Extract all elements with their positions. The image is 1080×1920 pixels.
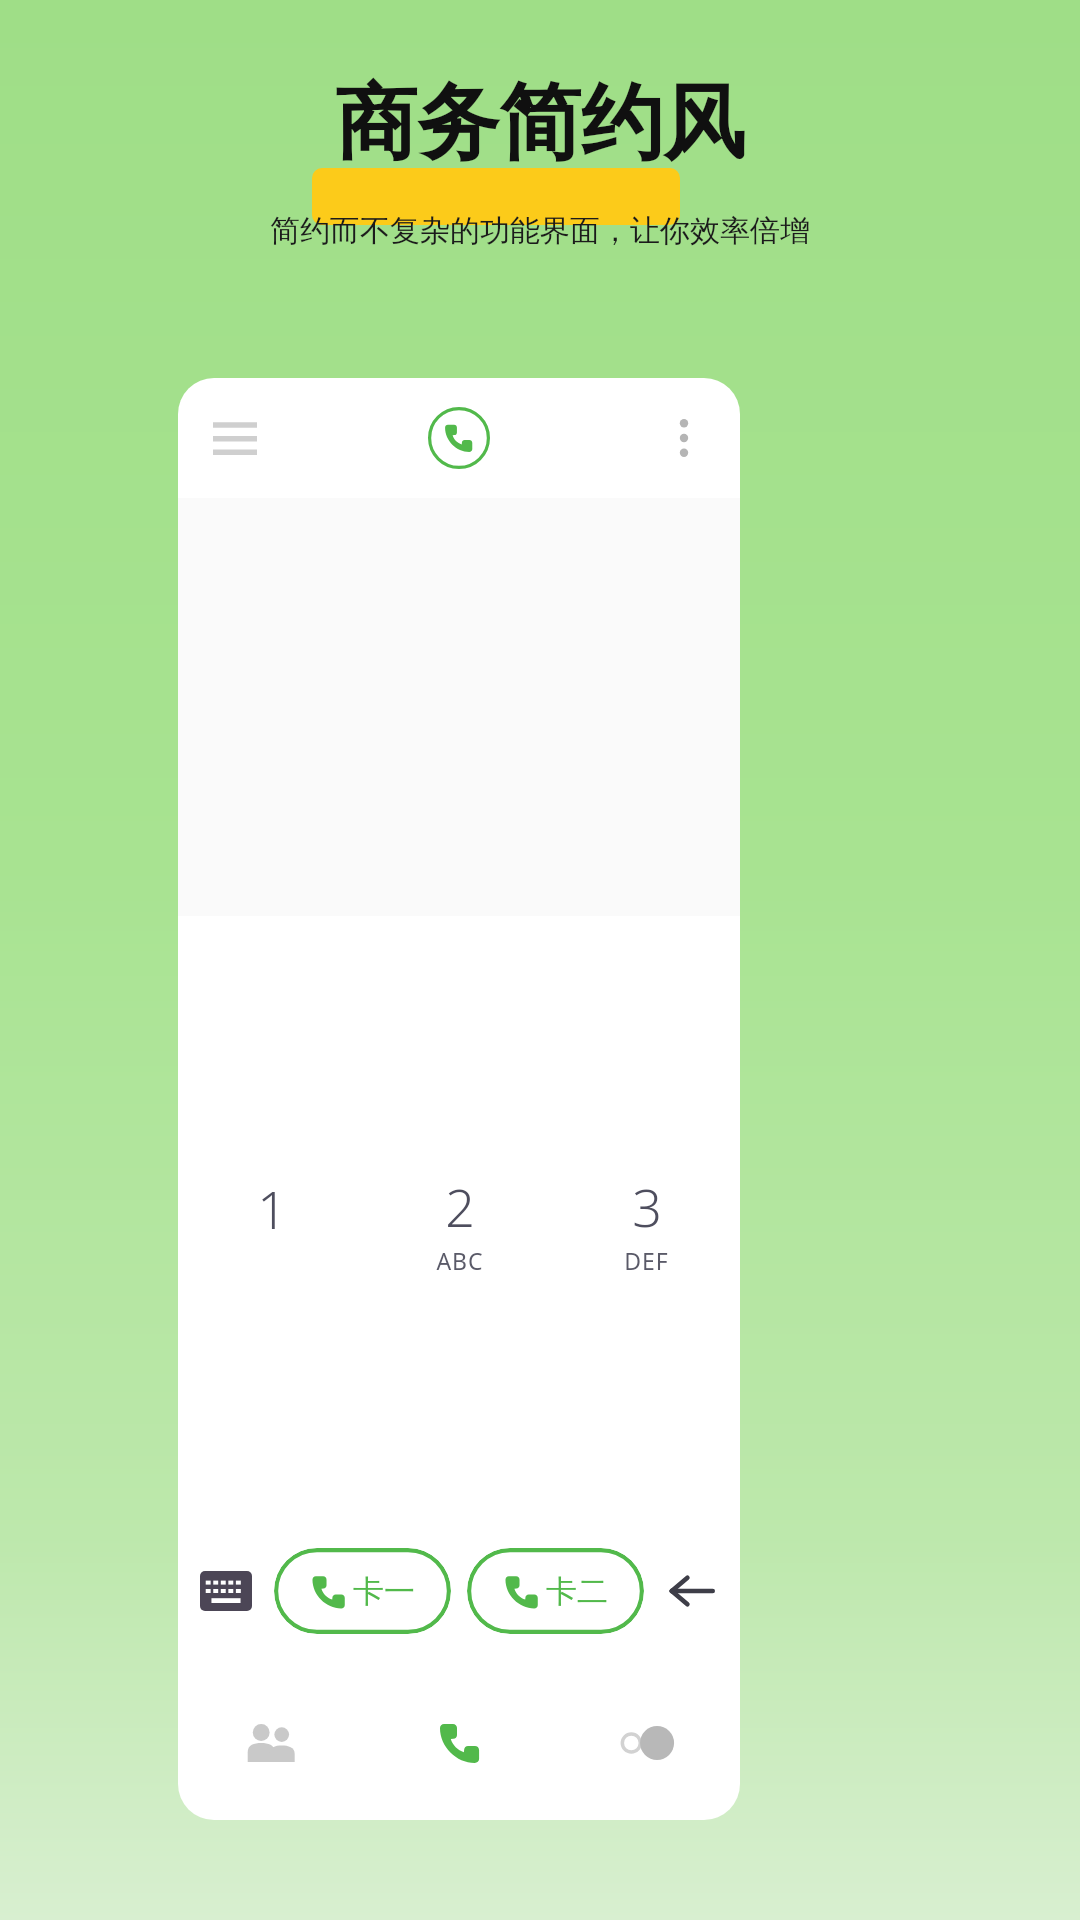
button[interactable]: Backspace bbox=[644, 1516, 740, 1666]
button[interactable]: Contacts bbox=[178, 1666, 366, 1820]
button[interactable]: Dialer bbox=[421, 400, 497, 476]
button[interactable]: More options bbox=[652, 406, 716, 470]
staticText: 简约而不复杂的功能界面，让你效率倍增 bbox=[0, 212, 1080, 250]
button[interactable]: 2 bbox=[366, 930, 553, 1516]
staticText: 卡二 bbox=[546, 1572, 608, 1611]
staticText: 卡一 bbox=[353, 1572, 415, 1611]
staticText: 商务简约风 bbox=[0, 72, 1080, 175]
staticText: 1 bbox=[257, 1173, 287, 1244]
button[interactable]: Dial bbox=[366, 1666, 553, 1820]
button[interactable]: Recents bbox=[553, 1666, 740, 1820]
button[interactable]: Menu bbox=[200, 403, 270, 473]
button[interactable]: 3 bbox=[553, 930, 740, 1516]
staticText: 3 bbox=[632, 1171, 662, 1242]
staticText: DEF bbox=[624, 1245, 669, 1276]
button[interactable]: 卡一 bbox=[274, 1548, 451, 1634]
button[interactable]: Keyboard bbox=[178, 1516, 274, 1666]
staticText: 2 bbox=[445, 1171, 475, 1242]
button[interactable]: 卡二 bbox=[467, 1548, 644, 1634]
button[interactable]: 1 bbox=[178, 930, 366, 1516]
staticText: ABC bbox=[436, 1245, 484, 1276]
